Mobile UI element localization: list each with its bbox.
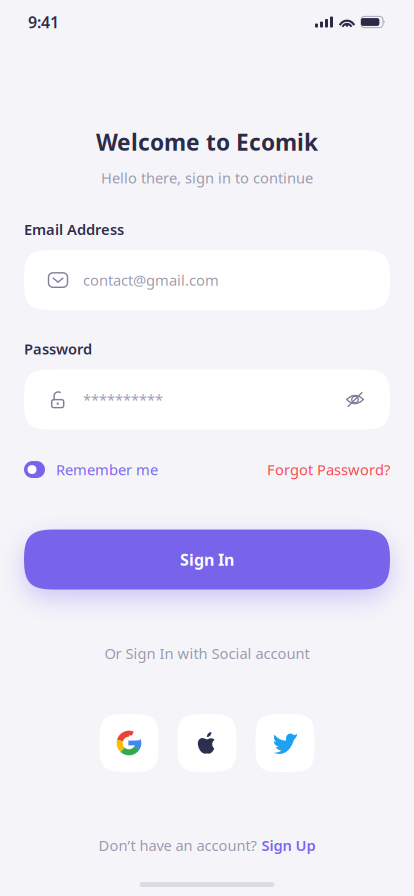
button[interactable]: Sign in with Apple <box>177 714 236 772</box>
staticText: Remember me <box>56 460 158 479</box>
staticText: 9:41 <box>28 11 59 33</box>
staticText: Sign Up <box>261 835 315 855</box>
button[interactable]: Remember me <box>24 460 158 479</box>
staticText: Password <box>24 339 92 359</box>
staticText: Welcome to Ecomik <box>96 127 318 157</box>
staticText: Hello there, sign in to continue <box>101 168 313 188</box>
staticText: Email Address <box>24 220 124 239</box>
button[interactable]: Forgot Password? <box>267 460 390 479</box>
button[interactable]: Sign in with Google <box>99 714 158 772</box>
staticText: ********** <box>83 390 163 409</box>
staticText: contact@gmail.com <box>83 270 219 290</box>
staticText: Or Sign In with Social account <box>104 643 309 663</box>
staticText: Don’t have an account? <box>98 835 256 855</box>
button[interactable]: Sign in with Twitter <box>255 714 314 772</box>
staticText: Forgot Password? <box>267 460 390 479</box>
button[interactable]: Show password <box>344 381 366 417</box>
staticText: Sign In <box>180 549 234 570</box>
button[interactable]: Don’t have an account? <box>98 835 315 855</box>
button[interactable]: Sign In <box>24 529 390 589</box>
